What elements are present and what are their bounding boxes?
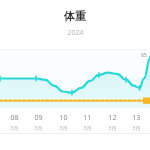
staticText: 3月	[83, 124, 92, 132]
staticText: 08	[10, 113, 19, 123]
staticText: 3月	[108, 124, 117, 132]
staticText: 13	[132, 113, 141, 123]
staticText: 3月	[59, 124, 68, 132]
button[interactable]: 体重	[0, 0, 150, 49]
button[interactable]: Weight chart	[0, 49, 150, 108]
staticText: 09	[34, 113, 43, 123]
staticText: 3月	[34, 124, 43, 132]
staticText: 3月	[132, 124, 141, 132]
staticText: 65	[141, 52, 147, 59]
staticText: 10	[59, 113, 68, 123]
button[interactable]: 08	[4, 113, 146, 132]
staticText: 2024	[67, 28, 84, 38]
staticText: 3月	[10, 124, 19, 132]
staticText: 体重	[64, 9, 86, 23]
staticText: 11	[83, 113, 92, 123]
staticText: 12	[108, 113, 117, 123]
